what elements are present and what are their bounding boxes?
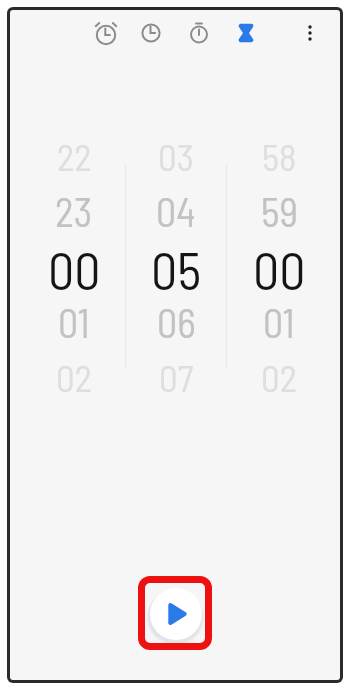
- staticText: 02: [56, 355, 93, 399]
- staticText: 01: [58, 298, 90, 346]
- staticText: 00: [48, 238, 101, 300]
- staticText: 07: [159, 355, 194, 399]
- staticText: 58: [262, 134, 297, 178]
- button[interactable]: [295, 18, 325, 48]
- staticText: 22: [57, 134, 92, 178]
- button[interactable]: [229, 16, 263, 50]
- staticText: 05: [151, 238, 202, 300]
- staticText: 00: [253, 238, 306, 300]
- staticText: 04: [156, 187, 196, 235]
- button[interactable]: [89, 18, 123, 52]
- button[interactable]: [182, 17, 216, 51]
- staticText: 06: [157, 298, 196, 346]
- staticText: 03: [158, 134, 194, 178]
- button[interactable]: [150, 588, 202, 640]
- staticText: 59: [261, 187, 298, 235]
- staticText: 02: [261, 355, 298, 399]
- staticText: 23: [55, 187, 93, 235]
- button[interactable]: [134, 16, 168, 50]
- staticText: 01: [263, 298, 295, 346]
